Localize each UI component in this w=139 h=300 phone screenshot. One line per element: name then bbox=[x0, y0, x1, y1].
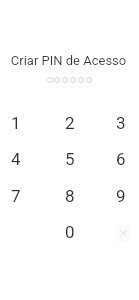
button[interactable]: 7 bbox=[0, 178, 39, 214]
staticText: 8 bbox=[65, 186, 75, 206]
staticText: Criar PIN de Acesso bbox=[0, 53, 138, 300]
staticText: 2 bbox=[65, 113, 75, 133]
button[interactable]: 8 bbox=[47, 178, 93, 214]
staticText: 4 bbox=[11, 149, 21, 169]
staticText: 7 bbox=[11, 186, 21, 206]
staticText: 1 bbox=[11, 113, 21, 133]
staticText: 3 bbox=[116, 113, 126, 133]
button[interactable]: 3 bbox=[98, 105, 139, 141]
staticText: 6 bbox=[116, 149, 126, 169]
button[interactable]: 9 bbox=[98, 178, 139, 214]
button[interactable]: 2 bbox=[47, 105, 93, 141]
button[interactable]: 1 bbox=[0, 105, 39, 141]
staticText: 9 bbox=[116, 186, 126, 206]
staticText: 5 bbox=[65, 149, 75, 169]
button[interactable]: 6 bbox=[98, 141, 139, 177]
button[interactable]: 0 bbox=[47, 214, 93, 250]
staticText: 0 bbox=[65, 222, 75, 242]
button[interactable]: 5 bbox=[47, 141, 93, 177]
button[interactable]: Delete bbox=[98, 214, 139, 250]
button[interactable]: 4 bbox=[0, 141, 39, 177]
